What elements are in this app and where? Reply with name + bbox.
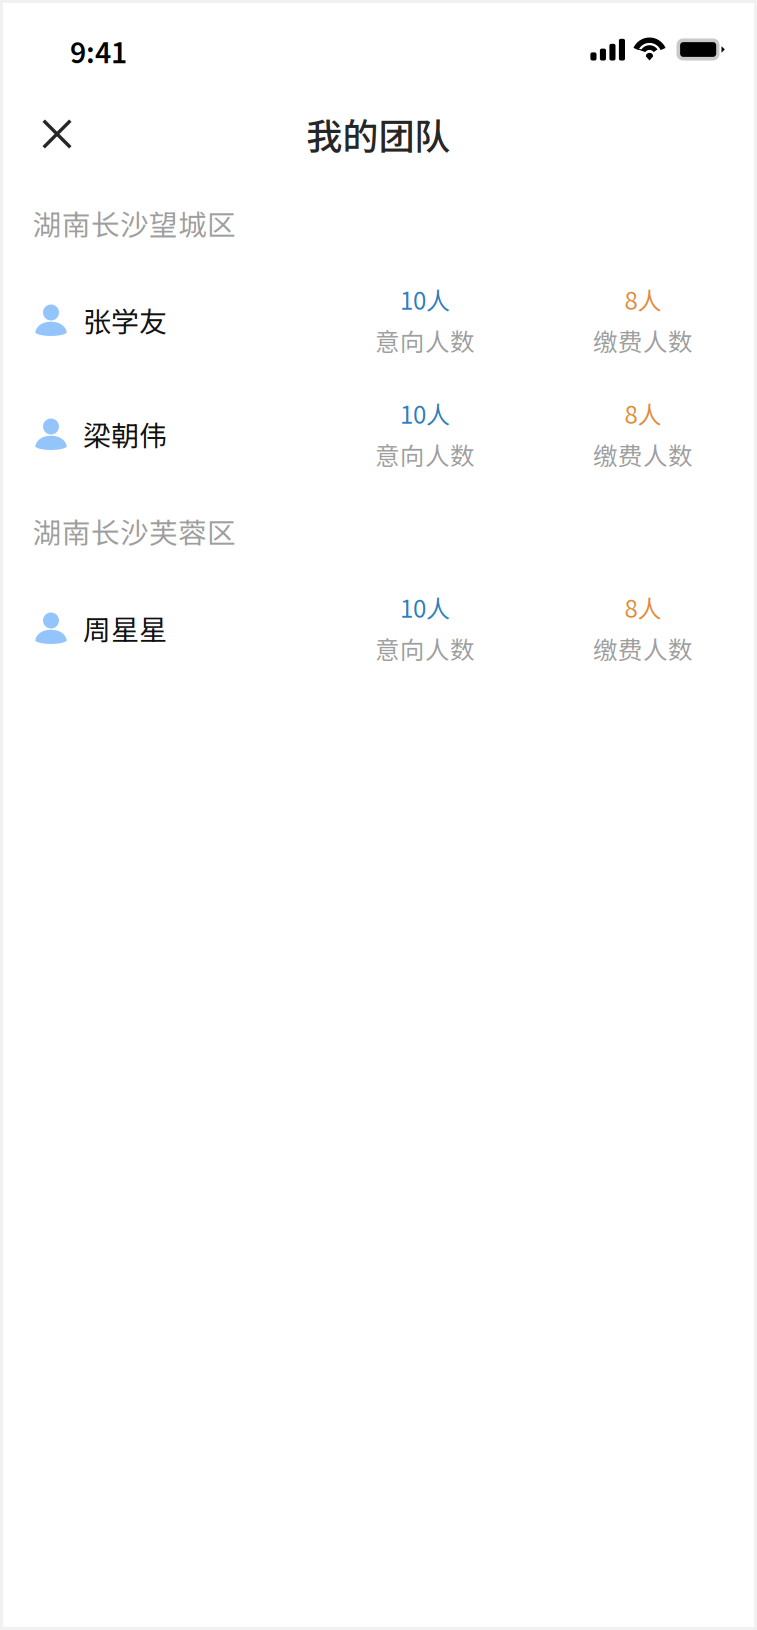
staticText: 10人 (400, 590, 450, 625)
staticText: 意向人数 (375, 437, 475, 472)
staticText: 8人 (624, 590, 661, 625)
staticText: 9:41 (70, 31, 127, 71)
staticText: 10人 (400, 282, 450, 317)
staticText: 湖南长沙望城区 (33, 202, 236, 244)
staticText: 湖南长沙芙蓉区 (33, 510, 236, 552)
staticText: 缴费人数 (593, 323, 693, 358)
staticText: 周星星 (83, 608, 167, 648)
staticText: 梁朝伟 (83, 414, 167, 454)
button[interactable]: 梁朝伟 (0, 377, 757, 491)
staticText: 缴费人数 (593, 631, 693, 666)
staticText: 8人 (624, 282, 661, 317)
staticText: 意向人数 (375, 631, 475, 666)
staticText: 意向人数 (375, 323, 475, 358)
staticText: 10人 (400, 396, 450, 431)
button[interactable]: 张学友 (0, 263, 757, 377)
button[interactable]: 周星星 (0, 571, 757, 685)
staticText: 我的团队 (306, 108, 450, 160)
staticText: 8人 (624, 396, 661, 431)
staticText: 缴费人数 (593, 437, 693, 472)
staticText: 张学友 (83, 300, 167, 340)
button[interactable]: Close (0, 102, 96, 166)
